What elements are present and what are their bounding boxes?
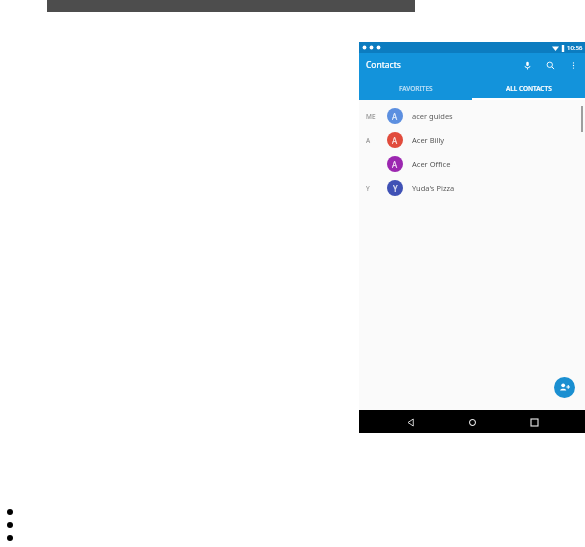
staticText: Y: [393, 183, 398, 194]
staticText: 10:56: [567, 44, 583, 52]
button[interactable]: A: [359, 128, 585, 152]
button[interactable]: Search: [543, 58, 557, 72]
staticText: acer guides: [412, 111, 453, 121]
staticText: Contacts: [366, 59, 401, 71]
button[interactable]: A: [359, 152, 585, 176]
button[interactable]: Voice search: [520, 58, 534, 72]
staticText: ME: [366, 112, 376, 121]
button[interactable]: ALL CONTACTS: [472, 76, 585, 100]
button[interactable]: Add contact: [554, 377, 575, 398]
staticText: Y: [366, 184, 370, 193]
staticText: FAVORITES: [399, 84, 433, 93]
staticText: A: [392, 159, 398, 170]
button[interactable]: Y: [359, 176, 585, 200]
button[interactable]: ME: [359, 104, 585, 128]
staticText: Acer Billy: [412, 135, 445, 145]
staticText: Acer Office: [412, 159, 451, 169]
button[interactable]: Home: [462, 412, 482, 432]
button[interactable]: More options: [566, 58, 580, 72]
staticText: ALL CONTACTS: [506, 84, 552, 93]
button[interactable]: Recents: [524, 412, 544, 432]
staticText: A: [392, 135, 398, 146]
staticText: A: [366, 136, 371, 145]
button[interactable]: FAVORITES: [359, 76, 472, 100]
button[interactable]: Back: [401, 412, 421, 432]
staticText: Yuda's Pizza: [412, 183, 455, 193]
staticText: A: [392, 111, 398, 122]
